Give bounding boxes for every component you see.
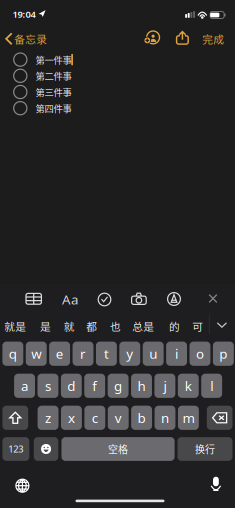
staticText: o [196,345,204,362]
button[interactable]: 第一件事 [35,53,71,67]
staticText: 就是 [4,318,26,334]
button[interactable]: Add People [140,28,164,48]
staticText: s [45,377,51,395]
button[interactable]: Emoji [34,437,58,461]
button[interactable]: h [131,374,152,398]
staticText: a [21,377,28,395]
staticText: 换行 [195,442,215,456]
button[interactable]: 换行 [177,437,232,461]
button[interactable]: x [61,406,82,430]
button[interactable]: Dictate [204,472,228,496]
button[interactable]: c [84,406,105,430]
staticText: 第二件事 [35,69,71,82]
staticText: 也 [110,318,121,334]
button[interactable]: k [178,374,199,398]
button[interactable]: 都 [82,317,101,335]
staticText: n [161,409,169,427]
button[interactable]: 的 [165,317,184,335]
button[interactable]: Text formatting [55,287,85,311]
button[interactable]: a [14,374,35,398]
button[interactable]: q [2,342,23,366]
button[interactable]: Delete [207,406,232,430]
button[interactable]: u [143,342,164,366]
button[interactable]: Mark 第三件事 complete [12,84,28,100]
staticText: u [149,345,157,362]
button[interactable]: 完成 [197,29,229,49]
staticText: h [137,377,145,395]
button[interactable]: Share [170,28,194,48]
button[interactable]: 空格 [61,437,175,461]
button[interactable]: y [119,342,140,366]
staticText: g [114,377,122,395]
staticText: 就 [64,318,75,334]
button[interactable]: Camera [124,287,154,311]
staticText: c [92,409,98,427]
button[interactable]: Markup [159,287,189,311]
button[interactable]: p [213,342,234,366]
staticText: 的 [169,318,180,334]
button[interactable]: Mark 第四件事 complete [12,100,28,116]
staticText: 备忘录 [14,31,47,46]
button[interactable]: Mark 第二件事 complete [12,68,28,84]
button[interactable]: n [155,406,175,430]
staticText: m [182,409,194,427]
button[interactable]: m [178,406,199,430]
staticText: j [163,377,166,395]
staticText: Aa [62,290,78,308]
button[interactable]: b [131,406,152,430]
button[interactable]: v [108,406,129,430]
button[interactable]: Checklist [89,287,119,311]
button[interactable]: 是 [36,317,55,335]
staticText: d [67,377,75,395]
button[interactable]: w [26,342,47,366]
button[interactable]: Table [19,287,49,311]
button[interactable]: Mark 第一件事 complete [12,52,28,68]
staticText: e [56,345,64,362]
staticText: 完成 [202,31,224,46]
button[interactable]: 第三件事 [35,85,71,99]
button[interactable]: 备忘录 [0,26,55,51]
staticText: v [115,409,122,427]
staticText: 第三件事 [35,85,71,99]
staticText: 空格 [108,442,128,456]
button[interactable]: 就是 [0,317,30,335]
staticText: p [219,345,227,362]
button[interactable]: g [108,374,129,398]
button[interactable]: s [37,374,58,398]
button[interactable]: z [38,406,58,430]
button[interactable]: Shift [2,406,28,430]
staticText: k [185,377,192,395]
staticText: 第一件事 [35,53,71,66]
button[interactable]: f [84,374,105,398]
button[interactable]: 第四件事 [35,101,71,115]
button[interactable]: i [166,342,187,366]
staticText: z [45,409,51,427]
staticText: 19:04 [12,8,35,20]
button[interactable]: j [154,374,175,398]
button[interactable]: o [189,342,210,366]
staticText: x [68,409,75,427]
button[interactable]: More candidates [211,315,233,335]
button[interactable]: 就 [60,317,79,335]
staticText: q [9,345,17,362]
button[interactable]: d [61,374,82,398]
staticText: f [92,377,97,395]
button[interactable]: 总是 [128,317,158,335]
button[interactable]: 123 [2,437,29,461]
button[interactable]: Next Keyboard [8,474,36,498]
staticText: b [138,409,146,427]
button[interactable]: t [96,342,117,366]
button[interactable]: 可 [188,317,207,335]
button[interactable]: r [73,342,93,366]
button[interactable]: e [49,342,70,366]
button[interactable]: 也 [106,317,125,335]
staticText: 总是 [132,318,154,334]
staticText: l [210,377,213,395]
button[interactable]: 第二件事 [35,69,71,83]
staticText: w [31,345,41,362]
staticText: y [126,345,133,362]
staticText: t [104,345,109,362]
staticText: 第四件事 [35,101,71,115]
button[interactable]: Hide Keyboard [200,286,226,310]
button[interactable]: l [201,374,222,398]
